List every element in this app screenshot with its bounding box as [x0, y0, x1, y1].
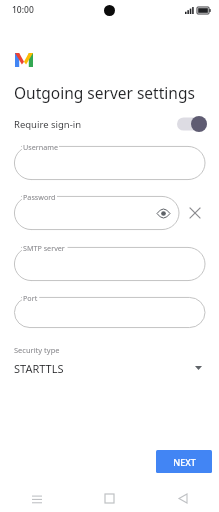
- staticText: Password: [23, 192, 56, 202]
- staticText: Outgoing server settings: [14, 82, 195, 103]
- staticText: NEXT: [173, 456, 196, 468]
- staticText: 10:00: [12, 4, 34, 16]
- staticText: STARTTLS: [14, 361, 64, 376]
- button[interactable]: Require sign-in: [0, 112, 219, 136]
- button[interactable]: Username: [14, 146, 205, 180]
- staticText: Username: [23, 142, 58, 152]
- button[interactable]: STARTTLS: [0, 357, 219, 379]
- button[interactable]: Back: [146, 485, 219, 512]
- button[interactable]: Port: [14, 297, 205, 328]
- staticText: Require sign-in: [14, 118, 82, 131]
- button[interactable]: Clear password: [185, 203, 205, 223]
- button[interactable]: Password: [14, 196, 179, 230]
- button[interactable]: Show password: [155, 205, 171, 221]
- button[interactable]: SMTP server: [14, 247, 205, 281]
- button[interactable]: Home: [73, 485, 146, 512]
- button[interactable]: NEXT: [156, 450, 212, 473]
- button[interactable]: Require sign-in toggle: [177, 116, 207, 132]
- staticText: SMTP server: [23, 243, 65, 253]
- button[interactable]: Recents: [0, 485, 73, 512]
- staticText: Security type: [14, 345, 60, 355]
- staticText: Port: [23, 293, 38, 303]
